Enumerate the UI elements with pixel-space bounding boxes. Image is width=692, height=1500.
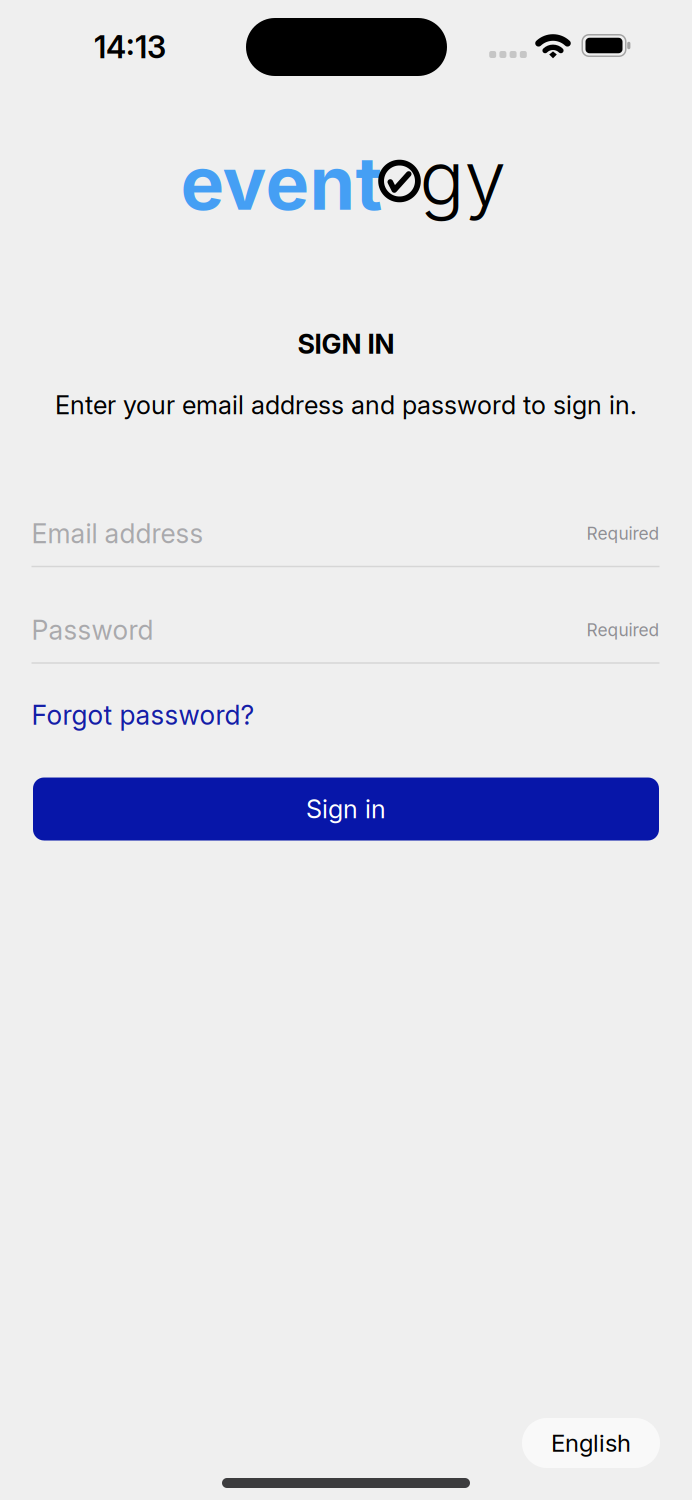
staticText: Email address <box>31 518 203 549</box>
button[interactable]: Forgot password? <box>31 699 254 731</box>
staticText: Required <box>586 523 659 544</box>
staticText: event <box>180 140 382 226</box>
staticText: 14:13 <box>94 29 166 65</box>
button[interactable]: Email address <box>31 511 659 571</box>
staticText: Sign in <box>306 794 386 824</box>
staticText: Forgot password? <box>31 699 254 731</box>
button[interactable]: English <box>522 1418 660 1468</box>
staticText: Required <box>586 620 659 640</box>
button[interactable]: Sign in <box>33 777 659 840</box>
staticText: SIGN IN <box>297 328 394 360</box>
staticText: Password <box>31 614 153 646</box>
staticText: gy <box>419 134 506 222</box>
staticText: Enter your email address and password to… <box>55 390 637 420</box>
button[interactable]: Password <box>31 608 659 668</box>
staticText: English <box>551 1429 631 1457</box>
